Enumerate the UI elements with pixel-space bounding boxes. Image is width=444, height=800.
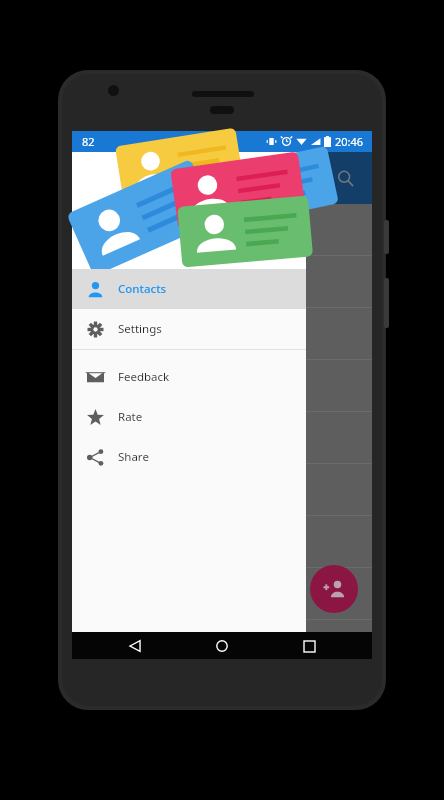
button[interactable] xyxy=(72,308,372,360)
button[interactable]: Recents xyxy=(298,635,320,657)
button[interactable]: Rate xyxy=(72,397,306,437)
staticText: 20:46 xyxy=(335,134,364,149)
button[interactable]: Contacts xyxy=(72,269,306,309)
button[interactable]: Add contact xyxy=(310,565,358,613)
button[interactable] xyxy=(72,516,372,568)
button[interactable]: Search xyxy=(328,161,362,195)
staticText: Contacts xyxy=(118,281,167,297)
button[interactable] xyxy=(72,256,372,308)
button[interactable] xyxy=(72,568,372,620)
button[interactable]: Home xyxy=(211,635,233,657)
button[interactable]: Back xyxy=(124,635,146,657)
button[interactable]: Feedback xyxy=(72,357,306,397)
staticText: Feedback xyxy=(118,369,170,385)
button[interactable]: Share xyxy=(72,437,306,477)
staticText: Rate xyxy=(118,409,143,425)
button[interactable]: Settings xyxy=(72,309,306,349)
staticText: Settings xyxy=(118,321,162,337)
staticText: 82 xyxy=(82,134,95,149)
button[interactable] xyxy=(72,360,372,412)
button[interactable] xyxy=(72,464,372,516)
button[interactable] xyxy=(72,204,372,256)
staticText: Share xyxy=(118,449,149,465)
button[interactable] xyxy=(72,412,372,464)
